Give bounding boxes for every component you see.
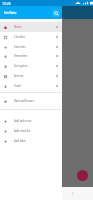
staticText: Trash (14, 84, 21, 88)
staticText: Favorites (14, 45, 26, 49)
button[interactable]: Add label (0, 136, 62, 146)
staticText: FairNote (4, 11, 17, 15)
staticText: Notes (14, 25, 22, 29)
staticText: Archive (14, 74, 24, 78)
staticText: Add checklist (14, 129, 31, 133)
staticText: Add label (14, 139, 26, 143)
button[interactable]: Notes (0, 22, 62, 32)
button[interactable]: Archive (0, 71, 62, 81)
button[interactable]: Reminders (0, 51, 62, 61)
button[interactable]: Trash (0, 81, 62, 91)
button[interactable]: Encryption (0, 61, 62, 71)
button[interactable]: Backup/Restore (0, 96, 62, 106)
button[interactable]: Search (52, 9, 60, 17)
button[interactable]: Add task note (0, 116, 62, 126)
button[interactable]: Favorites (0, 42, 62, 52)
button[interactable]: Checklist (0, 32, 62, 42)
staticText: Checklist (14, 35, 26, 39)
button[interactable]: Back (67, 188, 78, 199)
staticText: 10:26 (2, 1, 11, 6)
staticText: Encryption (14, 64, 28, 68)
button[interactable]: Add note (77, 170, 88, 181)
staticText: Reminders (14, 54, 28, 58)
staticText: Add task note (14, 119, 32, 123)
staticText: Backup/Restore (14, 99, 34, 103)
button[interactable]: Add checklist (0, 126, 62, 136)
